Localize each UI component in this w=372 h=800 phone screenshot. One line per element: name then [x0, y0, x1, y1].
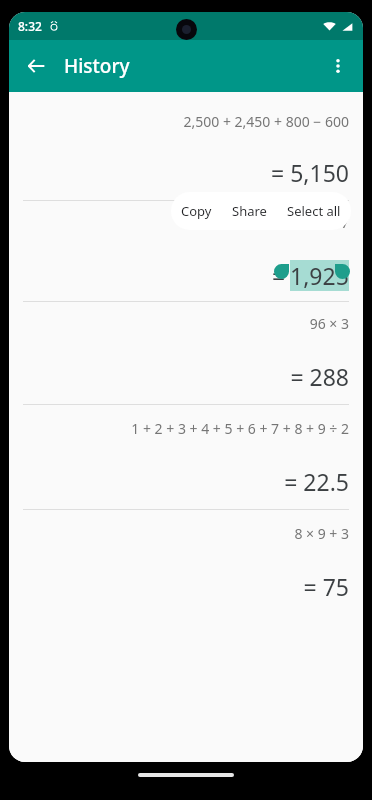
staticText: = 5,150 [9, 157, 349, 188]
staticText: 2,500 + 2,450 + 800 − 600 [9, 112, 349, 131]
other: Selection end handle [335, 264, 350, 279]
staticText: = [272, 260, 286, 291]
staticText: 96 × 3 [9, 314, 349, 333]
button[interactable]: Copy [171, 192, 222, 230]
staticText: Copy [181, 202, 212, 220]
staticText: 275 ÷ 7 [9, 213, 349, 232]
button[interactable]: 96 × 3 [9, 302, 363, 404]
button[interactable]: 275 ÷ 7 [9, 201, 363, 301]
button[interactable]: More options [316, 44, 360, 88]
staticText: 1,925 [290, 260, 349, 291]
button[interactable]: 2,500 + 2,450 + 800 − 600 [9, 92, 363, 200]
staticText: Share [232, 202, 267, 220]
staticText: History [64, 53, 130, 79]
staticText: = 288 [9, 361, 349, 392]
button[interactable]: Share [222, 192, 277, 230]
button[interactable]: 1 + 2 + 3 + 4 + 5 + 6 + 7 + 8 + 9 ÷ 2 [9, 405, 363, 509]
staticText: 1 + 2 + 3 + 4 + 5 + 6 + 7 + 8 + 9 ÷ 2 [9, 419, 349, 438]
staticText: 8:32 [18, 18, 42, 34]
other: Selection start handle [274, 264, 289, 279]
button[interactable]: 8 × 9 + 3 [9, 510, 363, 614]
staticText: Select all [287, 202, 341, 220]
staticText: = 22.5 [9, 466, 349, 497]
button[interactable]: Select all [277, 192, 351, 230]
button[interactable]: Back [14, 44, 58, 88]
staticText: = 75 [9, 571, 349, 602]
staticText: 8 × 9 + 3 [9, 524, 349, 543]
